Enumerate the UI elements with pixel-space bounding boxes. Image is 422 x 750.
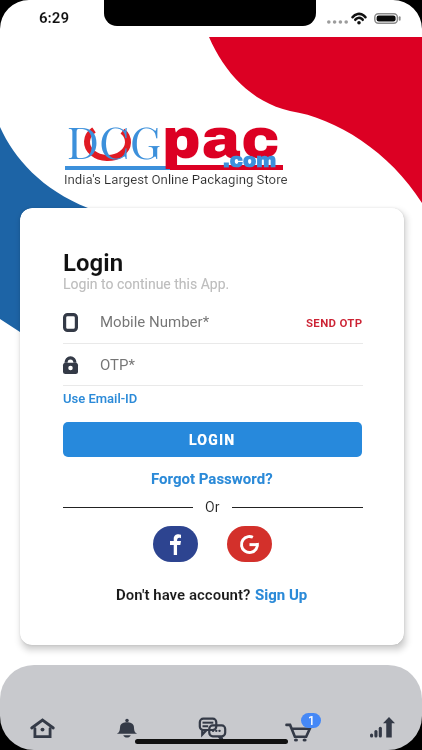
button[interactable]: Notifications [84,705,170,750]
button[interactable]: SEND OTP [306,316,363,329]
staticText: Login to continue this App. [63,276,230,292]
button[interactable]: Sign in with Google [227,526,272,562]
staticText: India's Largest Online Packaging Store [64,172,288,187]
staticText: LOGIN [189,432,236,448]
button[interactable]: Sign Up [255,586,308,604]
button[interactable]: Reports [340,705,422,750]
staticText: .com [223,149,277,171]
button[interactable]: Forgot Password? [151,470,273,488]
button[interactable]: OTP* [63,345,363,385]
button[interactable]: LOGIN [63,422,362,457]
button[interactable]: Cart [262,705,346,750]
staticText: 6:29 [39,9,70,27]
staticText: Don't have account? [116,586,255,604]
staticText: Login [63,249,124,277]
button[interactable]: Sign in with Facebook [153,526,198,562]
staticText: 1 [308,714,315,728]
button[interactable]: Home [0,705,84,750]
staticText: OTP* [100,356,135,374]
staticText: pac [162,107,282,170]
staticText: Or [205,499,220,515]
button[interactable]: Mobile Number* [63,302,363,342]
staticText: Mobile Number* [100,313,210,331]
button[interactable]: Messages [170,705,254,750]
staticText: DCG [67,111,162,170]
button[interactable]: Use Email-ID [63,391,138,406]
